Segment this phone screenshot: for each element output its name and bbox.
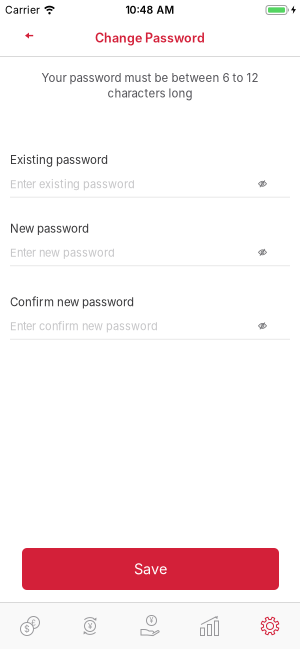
staticText: characters long [107, 87, 192, 100]
staticText: £ [31, 618, 36, 627]
staticText: Enter confirm new password [10, 320, 158, 333]
staticText: 10:48 AM [125, 4, 174, 16]
staticText: Your password must be between 6 to 12 [41, 71, 258, 85]
staticText: New password [10, 222, 89, 235]
staticText: ¥ [88, 621, 92, 631]
staticText: Confirm new password [10, 295, 134, 309]
staticText: Carrier [5, 4, 40, 16]
staticText: Save [134, 560, 167, 577]
button[interactable]: Save [22, 548, 279, 590]
staticText: Enter existing password [10, 178, 135, 191]
staticText: Enter new password [10, 246, 115, 259]
button[interactable]: Rates [0, 603, 60, 649]
staticText: Change Password [95, 31, 205, 45]
button[interactable]: Exchange [60, 603, 120, 649]
staticText: ¥ [149, 616, 153, 625]
staticText: $ [24, 624, 30, 634]
button[interactable]: Settings [240, 603, 300, 649]
staticText: Existing password [10, 153, 108, 167]
button[interactable]: Show password [258, 249, 290, 257]
button[interactable]: Show password [258, 322, 290, 330]
button[interactable]: Trends [180, 603, 240, 649]
button[interactable]: Remit [120, 603, 180, 649]
button[interactable]: Back [0, 20, 34, 56]
button[interactable]: Show password [258, 180, 290, 188]
